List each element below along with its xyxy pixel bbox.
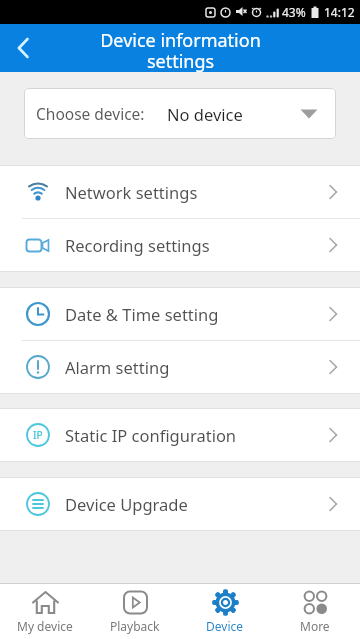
button[interactable]: Alarm setting — [0, 341, 360, 393]
button[interactable]: Date & Time setting — [0, 288, 360, 340]
staticText: 14:12 — [324, 4, 355, 20]
button[interactable]: Choose device: — [24, 88, 336, 139]
staticText: Device Upgrade — [65, 493, 188, 515]
button[interactable]: Device Upgrade — [0, 478, 360, 530]
button[interactable]: Device — [180, 584, 270, 639]
staticText: Playback — [110, 618, 160, 634]
staticText: Device — [206, 618, 244, 634]
button[interactable]: Playback — [90, 584, 180, 639]
staticText: Recording settings — [65, 234, 210, 256]
staticText: Network settings — [65, 181, 198, 203]
button[interactable] — [6, 30, 42, 66]
staticText: Date & Time setting — [65, 303, 219, 325]
staticText: Device information settings — [100, 28, 261, 72]
staticText: 43% — [282, 4, 306, 20]
staticText: Static IP configuration — [65, 424, 237, 446]
staticText: More — [300, 618, 330, 634]
button[interactable]: My device — [0, 584, 90, 639]
staticText: Alarm setting — [65, 356, 170, 378]
button[interactable]: Network settings — [0, 166, 360, 218]
button[interactable]: More — [270, 584, 360, 639]
staticText: No device — [167, 103, 243, 125]
button[interactable]: IP — [0, 409, 360, 461]
staticText: IP — [33, 428, 43, 442]
staticText: Choose device: — [36, 103, 145, 124]
staticText: My device — [17, 618, 73, 634]
button[interactable]: Recording settings — [0, 219, 360, 271]
